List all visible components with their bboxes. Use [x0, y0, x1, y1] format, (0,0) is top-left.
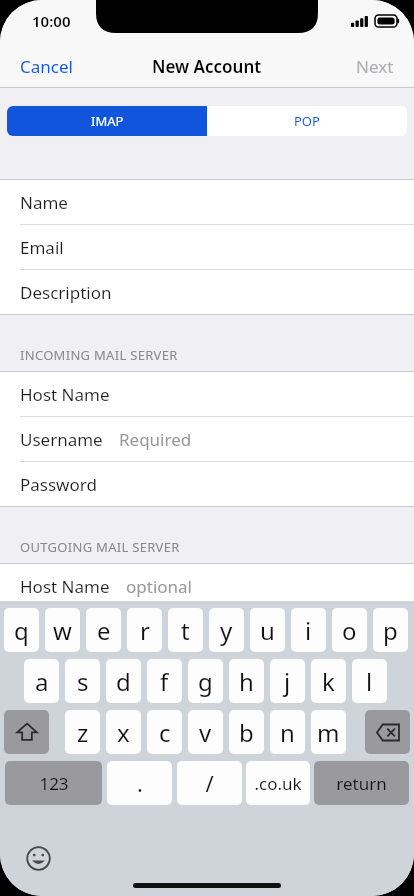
button[interactable]: e	[86, 608, 121, 653]
button[interactable]: i	[291, 608, 326, 653]
staticText: Cancel	[20, 55, 73, 78]
staticText: r	[140, 614, 150, 647]
button[interactable]: /	[177, 761, 242, 806]
button[interactable]: POP	[207, 106, 407, 136]
staticText: s	[77, 665, 89, 698]
button[interactable]: y	[209, 608, 244, 653]
button[interactable]: j	[270, 659, 305, 704]
button[interactable]: b	[229, 710, 264, 755]
button[interactable]: Cancel	[0, 45, 93, 88]
staticText: return	[336, 772, 387, 795]
button[interactable]: r	[127, 608, 162, 653]
button[interactable]: 123	[5, 761, 102, 806]
button[interactable]: d	[106, 659, 141, 704]
staticText: e	[97, 614, 111, 647]
staticText: u	[260, 614, 275, 647]
button[interactable]: w	[45, 608, 80, 653]
button[interactable]: return	[314, 761, 409, 806]
button[interactable]: Host Name	[0, 564, 414, 608]
button[interactable]: z	[65, 710, 100, 755]
staticText: Description	[20, 281, 112, 304]
button[interactable]: Name	[0, 180, 414, 224]
staticText: IMAP	[91, 112, 124, 130]
staticText: h	[239, 665, 254, 698]
button[interactable]: Shift	[4, 710, 49, 755]
staticText: g	[198, 665, 213, 698]
button[interactable]: t	[168, 608, 203, 653]
button[interactable]: Email	[0, 225, 414, 269]
staticText: d	[116, 665, 131, 698]
staticText: a	[35, 665, 49, 698]
staticText: Host Name	[20, 575, 110, 598]
staticText: m	[317, 716, 340, 749]
button[interactable]: v	[188, 710, 223, 755]
staticText: Name	[20, 191, 68, 214]
button[interactable]: c	[147, 710, 182, 755]
staticText: Username	[20, 428, 103, 451]
button[interactable]: .	[107, 761, 172, 806]
staticText: .	[137, 768, 143, 798]
button[interactable]: Backspace	[365, 710, 410, 755]
button[interactable]: g	[188, 659, 223, 704]
staticText: New Account	[152, 55, 262, 78]
button[interactable]: Username	[0, 417, 414, 461]
button[interactable]: s	[65, 659, 100, 704]
staticText: Host Name	[20, 383, 110, 406]
staticText: j	[284, 665, 291, 698]
button[interactable]: x	[106, 710, 141, 755]
staticText: o	[342, 614, 357, 647]
staticText: z	[77, 716, 89, 749]
staticText: y	[220, 614, 233, 647]
button[interactable]: f	[147, 659, 182, 704]
button[interactable]: l	[352, 659, 387, 704]
button[interactable]: .co.uk	[246, 761, 310, 806]
button[interactable]: Next	[336, 45, 414, 88]
staticText: 10:00	[32, 11, 71, 31]
staticText: OUTGOING MAIL SERVER	[20, 538, 180, 556]
button[interactable]: k	[311, 659, 346, 704]
button[interactable]: q	[4, 608, 39, 653]
button[interactable]: u	[250, 608, 285, 653]
staticText: .co.uk	[254, 772, 302, 795]
staticText: optional	[126, 575, 192, 598]
staticText: 123	[39, 772, 69, 795]
staticText: c	[159, 716, 171, 749]
button[interactable]: h	[229, 659, 264, 704]
staticText: f	[160, 665, 169, 698]
staticText: p	[383, 614, 398, 647]
staticText: q	[14, 614, 29, 647]
staticText: Next	[356, 55, 394, 78]
staticText: l	[366, 665, 373, 698]
staticText: POP	[294, 112, 320, 130]
staticText: n	[280, 716, 295, 749]
button[interactable]: Password	[0, 462, 414, 506]
button[interactable]: Description	[0, 270, 414, 314]
button[interactable]: IMAP	[7, 106, 207, 136]
button[interactable]: p	[373, 608, 408, 653]
staticText: Email	[20, 236, 64, 259]
staticText: INCOMING MAIL SERVER	[20, 346, 178, 364]
staticText: Password	[20, 473, 97, 496]
button[interactable]: m	[311, 710, 346, 755]
staticText: k	[322, 665, 335, 698]
button[interactable]: Host Name	[0, 372, 414, 416]
staticText: Required	[119, 428, 192, 451]
staticText: i	[305, 614, 312, 647]
staticText: t	[181, 614, 190, 647]
staticText: v	[199, 716, 212, 749]
button[interactable]: Emoji keyboard	[24, 844, 52, 872]
staticText: x	[117, 716, 130, 749]
button[interactable]: o	[332, 608, 367, 653]
staticText: /	[205, 768, 214, 798]
staticText: w	[53, 614, 72, 647]
staticText: b	[239, 716, 254, 749]
button[interactable]: n	[270, 710, 305, 755]
button[interactable]: a	[24, 659, 59, 704]
